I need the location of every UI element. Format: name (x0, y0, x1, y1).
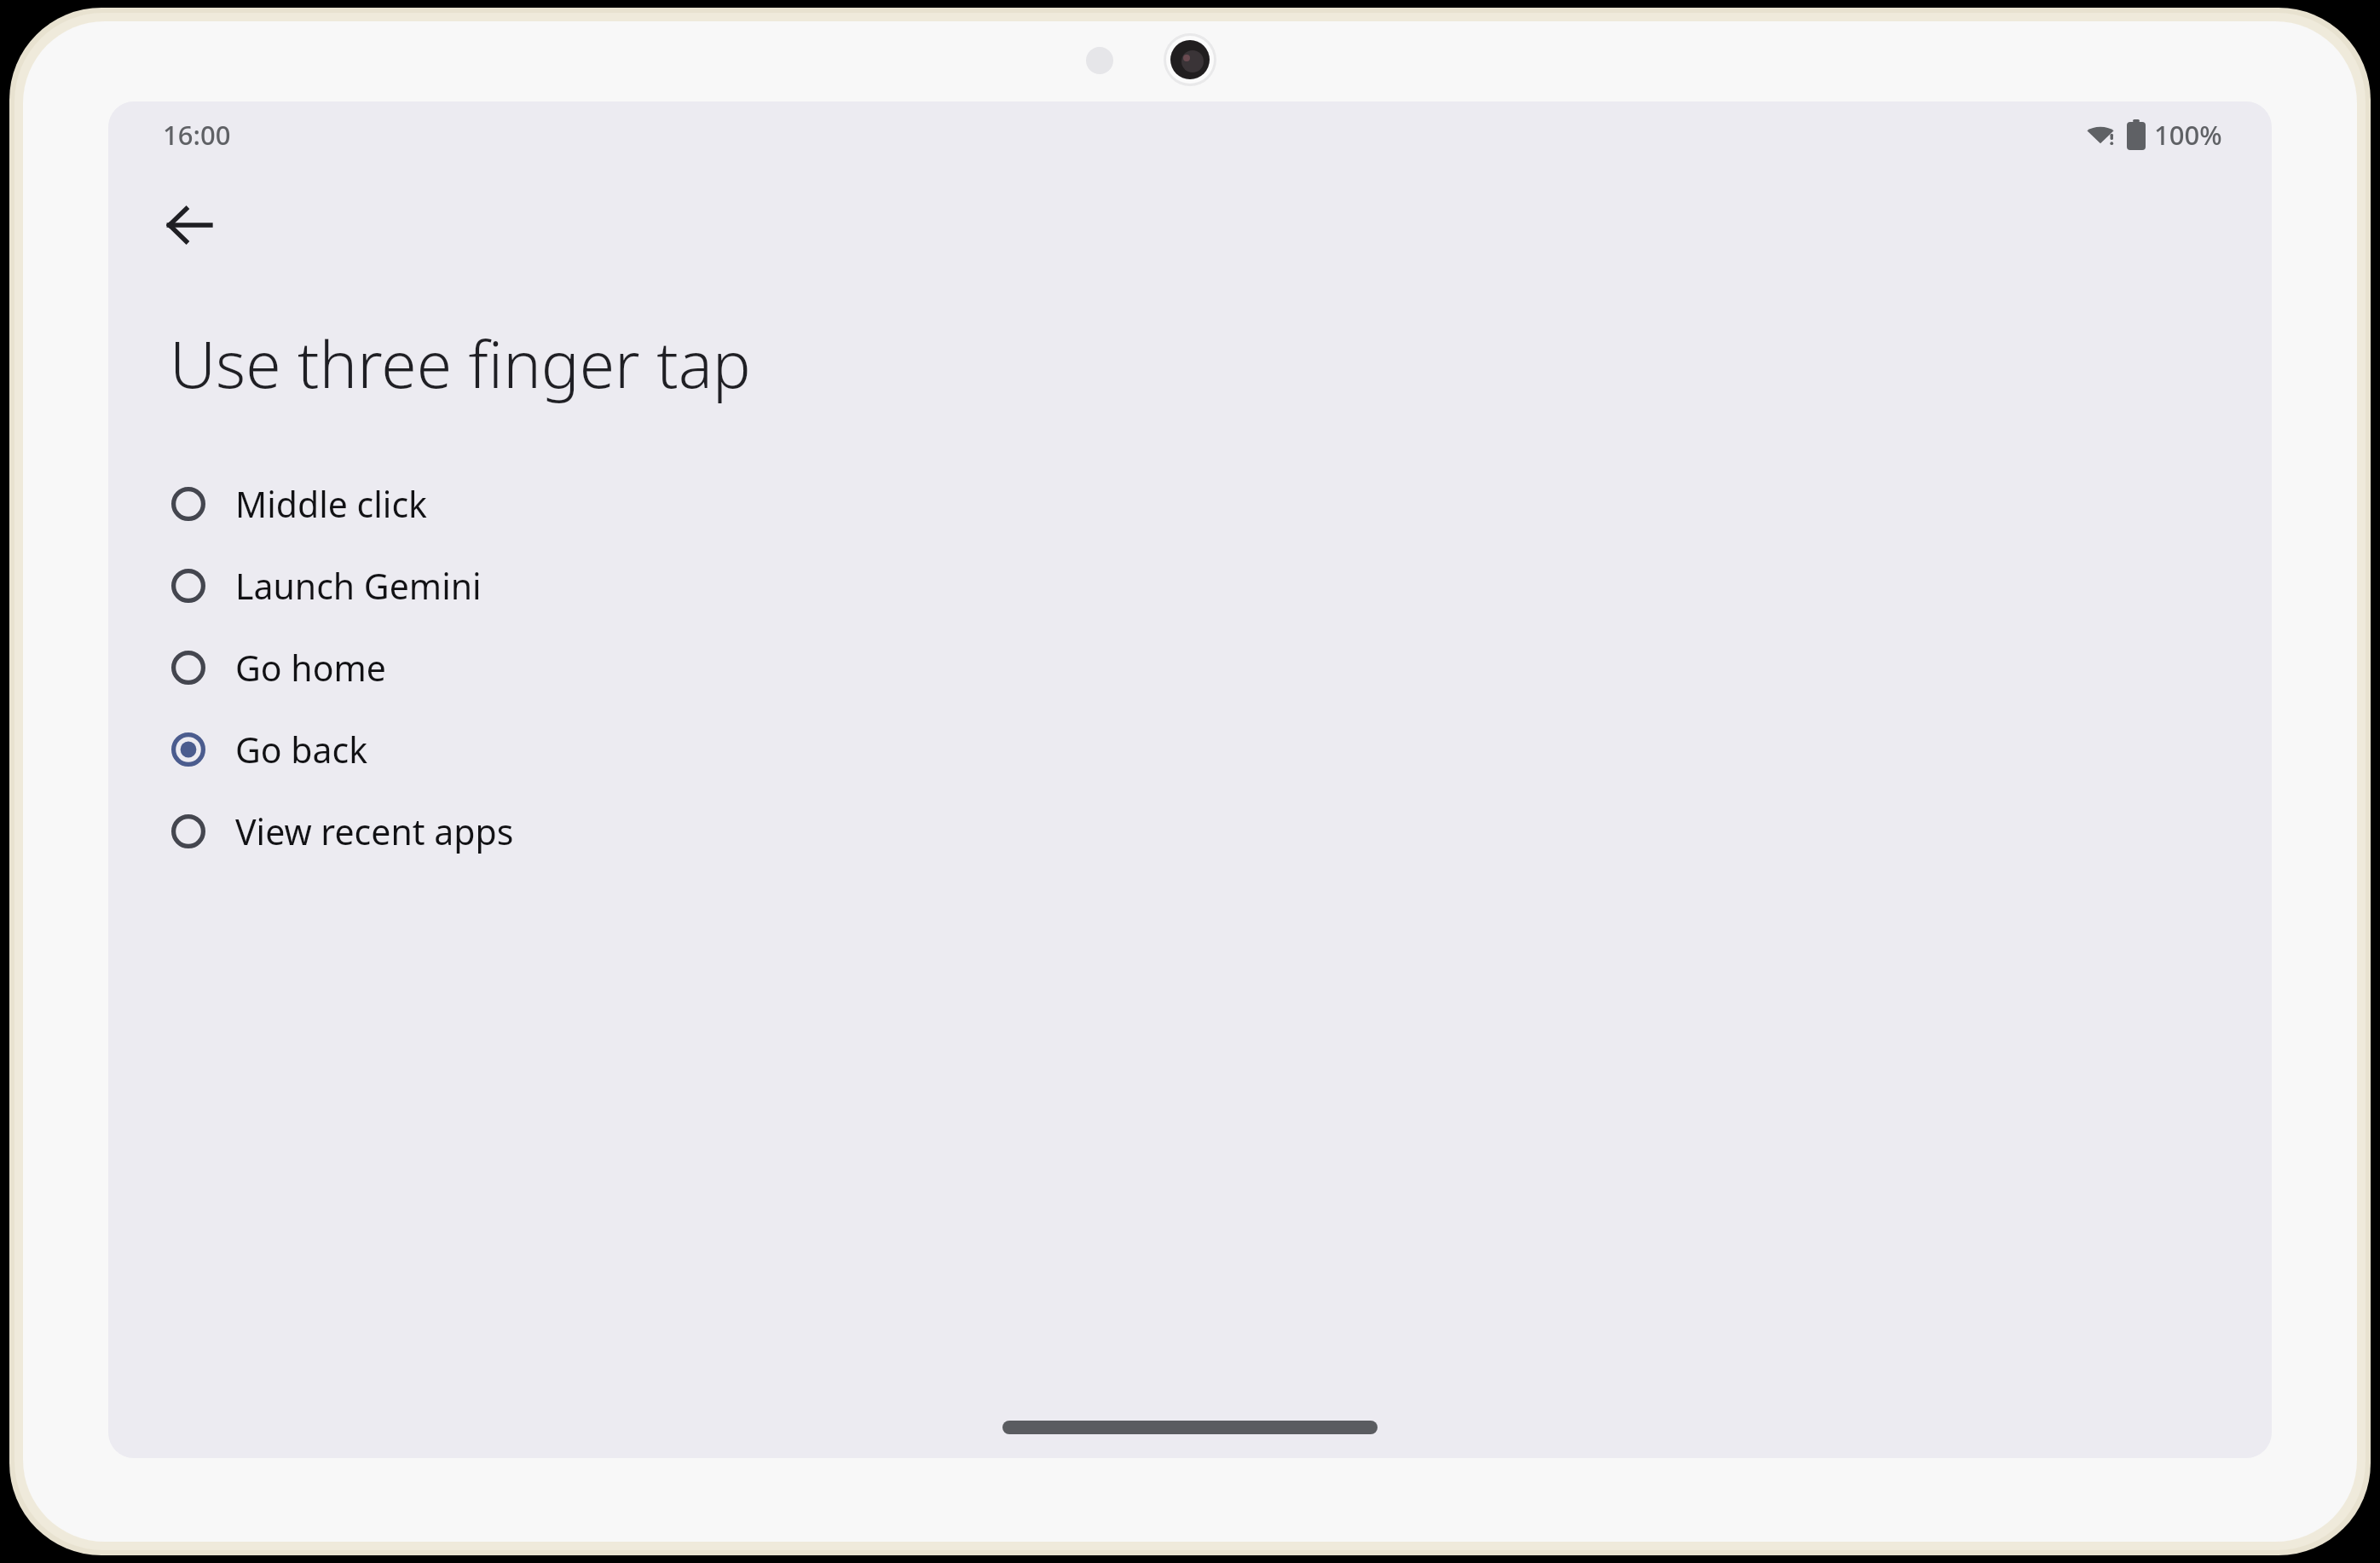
button[interactable]: Go back (108, 709, 2272, 790)
button[interactable]: Middle click (108, 463, 2272, 545)
staticText: Go back (235, 726, 368, 773)
staticText: 16:00 (163, 117, 231, 153)
staticText: View recent apps (235, 808, 514, 855)
staticText: Launch Gemini (235, 562, 482, 610)
button[interactable]: Launch Gemini (108, 545, 2272, 627)
staticText: Middle click (235, 480, 427, 528)
button[interactable]: Back (142, 178, 236, 272)
staticText: 100% (2154, 117, 2222, 153)
button[interactable]: View recent apps (108, 790, 2272, 872)
staticText: Use three finger tap (170, 320, 751, 407)
button[interactable]: Go home (108, 627, 2272, 709)
staticText: Go home (235, 644, 386, 692)
